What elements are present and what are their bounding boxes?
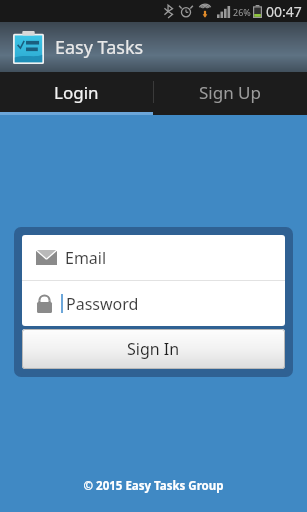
other: Email xyxy=(36,250,57,265)
staticText: Login xyxy=(54,81,99,104)
other: Password xyxy=(36,294,53,313)
button[interactable]: Sign Up xyxy=(153,72,307,112)
staticText: 00:47 xyxy=(266,2,302,21)
button[interactable]: Password xyxy=(22,281,285,326)
staticText: Password xyxy=(66,293,139,315)
staticText: Email xyxy=(65,247,107,269)
staticText: Sign In xyxy=(127,338,180,360)
button[interactable]: Sign In xyxy=(22,329,285,369)
staticText: 26% xyxy=(233,6,251,18)
button[interactable]: Email xyxy=(22,235,285,280)
staticText: © 2015 Easy Tasks Group xyxy=(0,478,307,494)
button[interactable]: Login xyxy=(0,72,153,112)
staticText: Sign Up xyxy=(199,81,261,104)
staticText: Easy Tasks xyxy=(55,35,144,60)
